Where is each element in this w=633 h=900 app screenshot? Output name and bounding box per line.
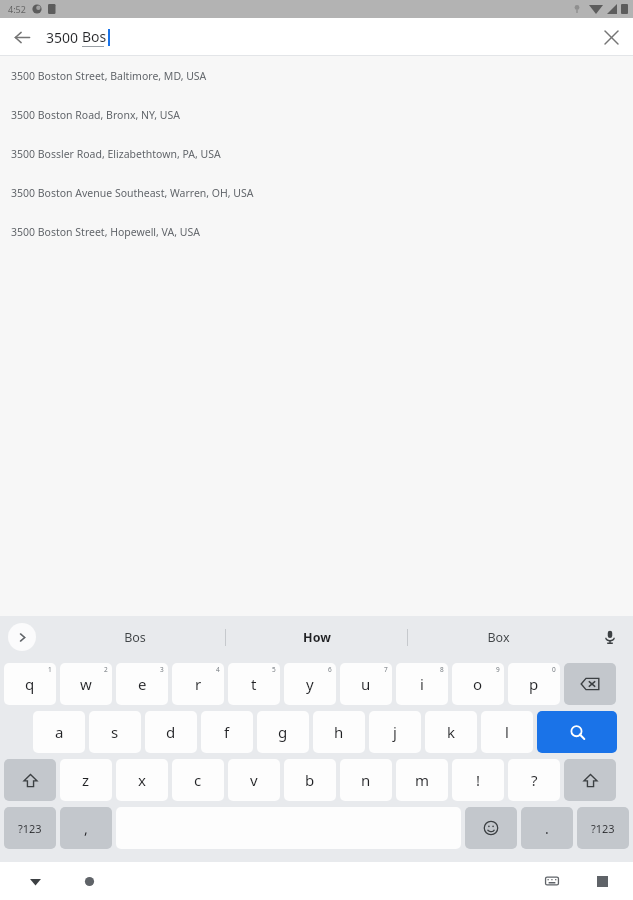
staticText: 3500 Bossler Road, Elizabethtown, PA, US… — [11, 147, 221, 161]
staticText: b — [305, 770, 315, 790]
button[interactable]: 3500 Boston Avenue Southeast, Warren, OH… — [0, 173, 633, 212]
button[interactable]: ! — [452, 759, 504, 801]
staticText: ? — [531, 770, 538, 790]
button[interactable]: Voice input — [595, 622, 625, 652]
staticText: . — [545, 819, 549, 838]
button[interactable]: n — [340, 759, 392, 801]
staticText: How — [303, 629, 331, 646]
staticText: 4:52 — [8, 3, 26, 15]
staticText: ?123 — [591, 821, 615, 836]
staticText: , — [84, 819, 88, 838]
staticText: 3500 Boston Street, Hopewell, VA, USA — [11, 225, 200, 239]
button[interactable]: u — [340, 663, 392, 705]
button[interactable]: 3500 Boston Road, Bronx, NY, USA — [0, 95, 633, 134]
button[interactable]: 3500 Boston Street, Baltimore, MD, USA — [0, 56, 633, 95]
staticText: g — [278, 722, 288, 742]
button[interactable]: v — [228, 759, 280, 801]
button[interactable]: 3500 Bossler Road, Elizabethtown, PA, US… — [0, 134, 633, 173]
staticText: r — [195, 674, 202, 694]
button[interactable]: ?123 — [4, 807, 56, 849]
button[interactable]: Shift — [564, 759, 616, 801]
staticText: 3500 Boston Street, Baltimore, MD, USA — [11, 69, 207, 83]
button[interactable]: Bos — [44, 616, 225, 658]
staticText: j — [393, 722, 397, 742]
staticText: i — [420, 674, 424, 694]
button[interactable]: r — [172, 663, 224, 705]
button[interactable]: y — [284, 663, 336, 705]
staticText: 3 — [160, 665, 164, 674]
staticText: Box — [487, 629, 510, 646]
button[interactable]: , — [60, 807, 112, 849]
button[interactable]: How — [226, 616, 407, 658]
button[interactable]: k — [425, 711, 477, 753]
button[interactable]: f — [201, 711, 253, 753]
button[interactable]: Home — [74, 866, 104, 896]
staticText: w — [80, 674, 92, 694]
staticText: Bos — [82, 27, 107, 46]
button[interactable]: o — [452, 663, 504, 705]
button[interactable]: Recent apps — [587, 866, 617, 896]
button[interactable]: q — [4, 663, 56, 705]
staticText: m — [415, 770, 430, 790]
staticText: h — [334, 722, 344, 742]
button[interactable]: Hide keyboard — [20, 866, 50, 896]
staticText: 5 — [272, 665, 276, 674]
button[interactable]: More suggestions — [8, 623, 36, 651]
button[interactable]: s — [89, 711, 141, 753]
staticText: 2 — [104, 665, 108, 674]
button[interactable]: m — [396, 759, 448, 801]
staticText: 7 — [384, 665, 388, 674]
button[interactable]: e — [116, 663, 168, 705]
button[interactable]: g — [257, 711, 309, 753]
staticText: 0 — [552, 665, 556, 674]
button[interactable]: Search — [537, 711, 617, 753]
button[interactable]: z — [60, 759, 112, 801]
button[interactable]: w — [60, 663, 112, 705]
button[interactable]: . — [521, 807, 573, 849]
staticText: 3500 Boston Road, Bronx, NY, USA — [11, 108, 180, 122]
button[interactable]: Back — [6, 21, 38, 53]
button[interactable]: l — [481, 711, 533, 753]
staticText: x — [138, 770, 146, 790]
button[interactable]: Shift — [4, 759, 56, 801]
staticText: d — [166, 722, 176, 742]
staticText: 1 — [48, 665, 52, 674]
staticText: n — [361, 770, 371, 790]
button[interactable]: Backspace — [564, 663, 616, 705]
staticText: l — [505, 722, 509, 742]
button[interactable]: Clear — [595, 21, 627, 53]
staticText: s — [111, 722, 119, 742]
staticText: e — [138, 674, 147, 694]
button[interactable]: 3500 Boston Street, Hopewell, VA, USA — [0, 212, 633, 251]
button[interactable]: x — [116, 759, 168, 801]
button[interactable]: Box — [408, 616, 589, 658]
staticText: 3500 — [46, 28, 82, 47]
staticText: c — [194, 770, 202, 790]
button[interactable]: h — [313, 711, 365, 753]
button[interactable]: Switch keyboard — [537, 866, 567, 896]
button[interactable]: p — [508, 663, 560, 705]
staticText: y — [306, 674, 314, 694]
staticText: ?123 — [18, 821, 42, 836]
staticText: o — [473, 674, 483, 694]
staticText: 3500 Boston Avenue Southeast, Warren, OH… — [11, 186, 254, 200]
staticText: 4 — [216, 665, 220, 674]
staticText: a — [55, 722, 64, 742]
button[interactable]: a — [33, 711, 85, 753]
button[interactable]: Emoji — [465, 807, 517, 849]
button[interactable]: j — [369, 711, 421, 753]
button[interactable]: c — [172, 759, 224, 801]
button[interactable]: b — [284, 759, 336, 801]
button[interactable]: t — [228, 663, 280, 705]
button[interactable]: ? — [508, 759, 560, 801]
staticText: z — [82, 770, 90, 790]
button[interactable]: d — [145, 711, 197, 753]
button[interactable]: i — [396, 663, 448, 705]
staticText: 8 — [440, 665, 444, 674]
staticText: p — [529, 674, 539, 694]
staticText: q — [25, 674, 35, 694]
staticText: 9 — [496, 665, 500, 674]
button[interactable]: ?123 — [577, 807, 629, 849]
staticText: u — [361, 674, 371, 694]
